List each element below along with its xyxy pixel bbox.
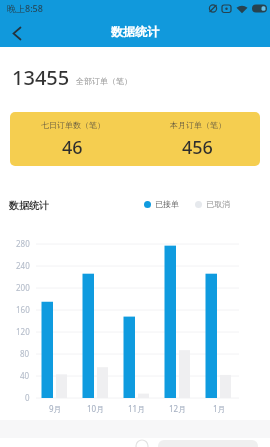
staticText: 200 [16,282,30,293]
staticText: 本月订单（笔） [170,120,226,130]
button[interactable]: 已取消 [195,197,230,211]
staticText: 13455 [12,64,70,91]
staticText: 数据统计 [111,24,159,39]
staticText: 晚上8:58 [7,2,43,14]
staticText: 46 [62,135,83,160]
staticText: 120 [16,326,30,337]
staticText: 280 [16,238,30,249]
staticText: 全部订单（笔） [76,76,132,86]
staticText: 七日订单数（笔） [41,120,105,130]
staticText: 80 [20,348,30,359]
staticText: 数据统计 [9,199,49,212]
staticText: 456 [182,135,213,160]
staticText: 已接单 [155,199,179,209]
staticText: 240 [16,260,30,271]
staticText: 160 [16,304,30,315]
button[interactable]: 七日订单数（笔） [10,112,260,166]
staticText: 40 [20,370,30,381]
button[interactable]: 已接单 [144,197,179,211]
staticText: 1月 [213,403,226,414]
staticText: 已取消 [206,199,230,209]
staticText: 12月 [169,403,187,414]
button[interactable] [2,19,30,46]
staticText: 0 [25,392,30,403]
staticText: 11月 [128,403,146,414]
staticText: 9月 [49,403,62,414]
staticText: 10月 [87,403,105,414]
